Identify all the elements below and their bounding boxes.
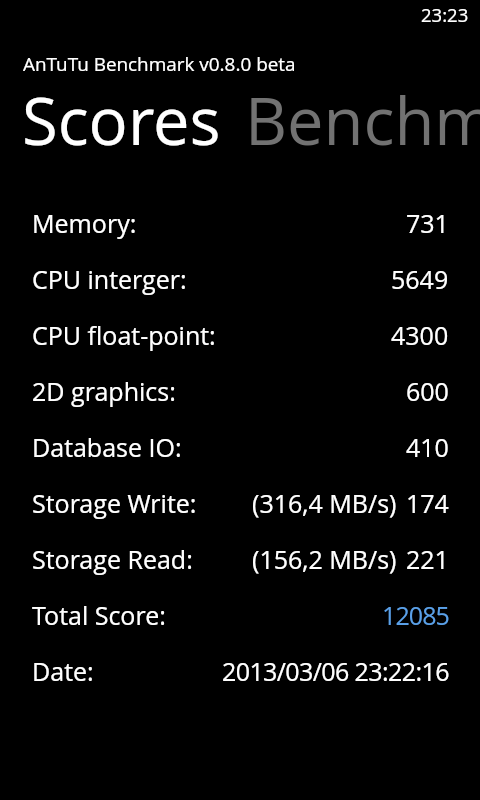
button[interactable]: Scores (22, 76, 221, 165)
staticText: Storage Read: (32, 542, 193, 576)
staticText: 174 (406, 486, 449, 520)
button[interactable]: Total Score: (0, 598, 480, 632)
button[interactable]: Benchmark (245, 76, 480, 165)
staticText: CPU interger: (32, 262, 187, 296)
staticText: 410 (406, 430, 449, 464)
button[interactable]: Memory: (0, 206, 480, 240)
staticText: (316,4 MB/s) (252, 486, 397, 520)
button[interactable]: Database IO: (0, 430, 480, 464)
staticText: 221 (406, 542, 449, 576)
staticText: Memory: (32, 206, 137, 240)
button[interactable]: CPU interger: (0, 262, 480, 296)
staticText: 2D graphics: (32, 374, 176, 408)
staticText: 600 (406, 374, 449, 408)
staticText: CPU float-point: (32, 318, 216, 352)
staticText: (156,2 MB/s) (252, 542, 397, 576)
staticText: 12085 (382, 598, 449, 632)
staticText: 5649 (391, 262, 449, 296)
staticText: 4300 (391, 318, 449, 352)
staticText: AnTuTu Benchmark v0.8.0 beta (23, 51, 296, 77)
button[interactable]: Status bar, 23:23 (0, 0, 480, 30)
button[interactable]: Storage Write: (0, 486, 480, 520)
staticText: 2013/03/06 23:22:16 (222, 654, 449, 688)
button[interactable]: Date: (0, 654, 480, 688)
button[interactable]: CPU float-point: (0, 318, 480, 352)
staticText: 731 (406, 206, 449, 240)
staticText: Total Score: (32, 598, 166, 632)
staticText: Database IO: (32, 430, 182, 464)
staticText: Date: (32, 654, 94, 688)
staticText: Storage Write: (32, 486, 197, 520)
button[interactable]: 2D graphics: (0, 374, 480, 408)
button[interactable]: Storage Read: (0, 542, 480, 576)
staticText: 23:23 (421, 2, 469, 27)
